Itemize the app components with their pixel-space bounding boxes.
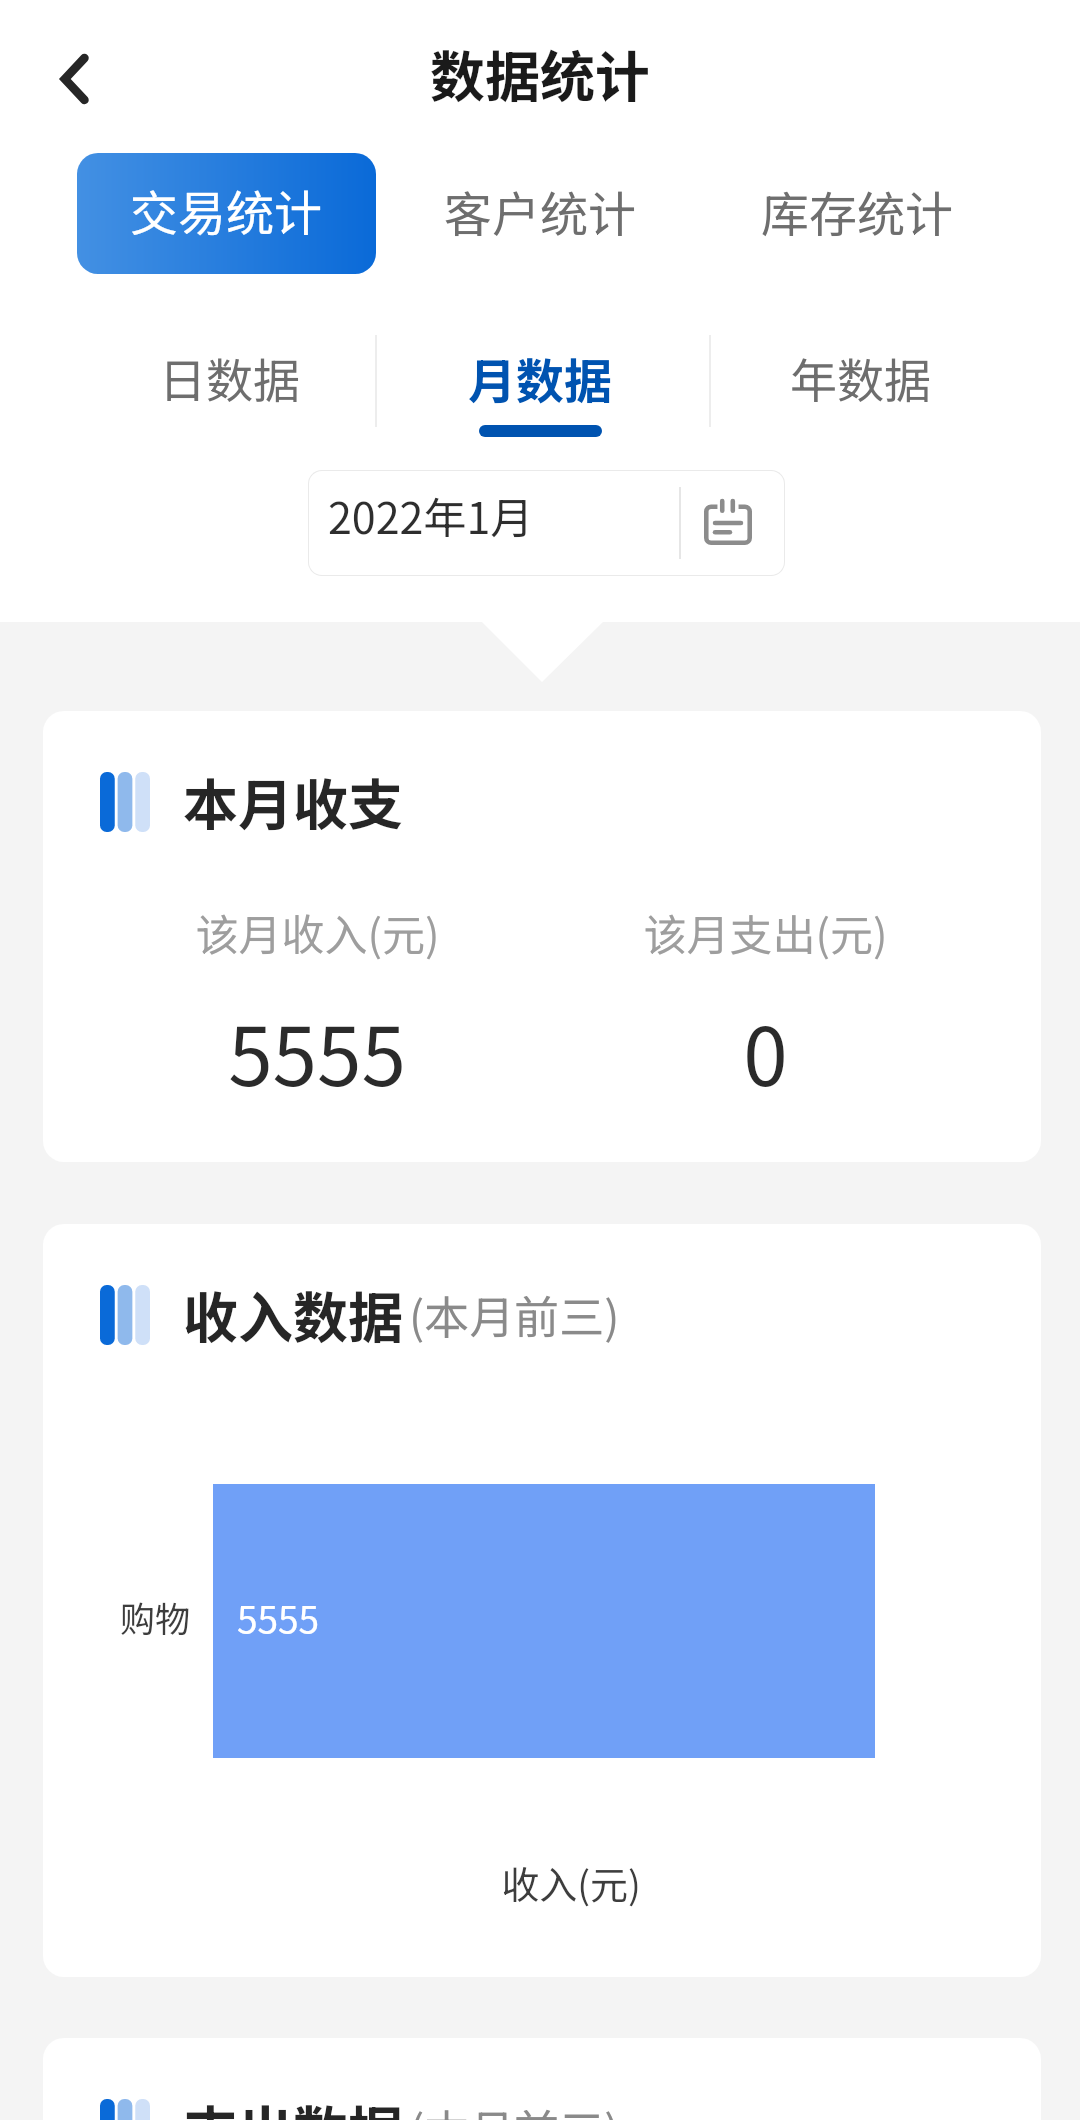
button[interactable]: 2022年1月 [308, 470, 785, 576]
staticText: 该月支出(元) [643, 901, 888, 963]
staticText: 客户统计 [444, 176, 637, 246]
button[interactable]: 本月收支 [43, 711, 1041, 1162]
staticText: 月数据 [468, 343, 613, 413]
staticText: 购物 [120, 1591, 191, 1642]
button[interactable]: 支出数据 [43, 2038, 1041, 2120]
staticText: (本月前三) [409, 1282, 620, 1347]
button[interactable]: 月数据 [430, 343, 650, 463]
staticText: (本月前三) [409, 2096, 620, 2120]
staticText: 交易统计 [130, 175, 323, 245]
button[interactable]: 库存统计 [737, 150, 977, 271]
staticText: 年数据 [790, 343, 931, 411]
staticText: 该月收入(元) [195, 901, 440, 963]
staticText: 本月收支 [183, 761, 404, 841]
staticText: 数据统计 [430, 33, 651, 113]
staticText: 支出数据 [183, 2088, 404, 2120]
staticText: 库存统计 [761, 176, 954, 246]
button[interactable]: 日数据 [119, 343, 339, 463]
staticText: 日数据 [159, 343, 300, 411]
staticText: 收入数据 [183, 1274, 404, 1354]
button[interactable]: 收入数据 [43, 1224, 1041, 1977]
staticText: 2022年1月 [328, 484, 534, 546]
button[interactable]: 客户统计 [420, 150, 660, 271]
button[interactable]: 交易统计 [77, 153, 376, 274]
staticText: 0 [743, 993, 788, 1109]
staticText: 5555 [237, 1591, 320, 1645]
button[interactable]: 年数据 [750, 343, 970, 463]
button[interactable]: Back [35, 38, 117, 120]
staticText: 5555 [228, 993, 406, 1109]
staticText: 收入(元) [501, 1855, 641, 1910]
